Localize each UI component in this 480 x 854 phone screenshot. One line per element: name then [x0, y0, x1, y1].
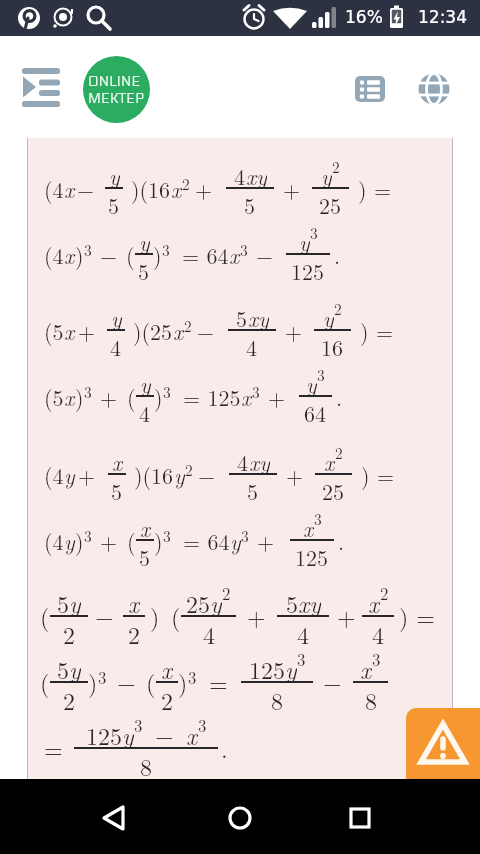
staticText: + [100, 525, 118, 556]
staticText: (4 [44, 459, 64, 490]
staticText: x [128, 586, 140, 615]
staticText: 125 [291, 255, 325, 282]
staticText: x [140, 512, 151, 539]
staticText: 5 [138, 255, 150, 282]
staticText: 5 [108, 189, 120, 216]
staticText: 2 [63, 683, 75, 712]
staticText: 5 [236, 302, 248, 329]
staticText: 3 [241, 525, 249, 547]
staticText: x [64, 239, 75, 270]
staticText: y [122, 718, 134, 747]
staticText: − [198, 459, 216, 490]
staticText: x [112, 446, 123, 473]
staticText: 3 [84, 381, 92, 403]
staticText: (4 [44, 239, 64, 270]
staticText: 3 [317, 364, 325, 386]
staticText: 125 [249, 652, 285, 681]
staticText: 2 [184, 315, 192, 337]
staticText: 3 [162, 239, 170, 261]
staticText: ) [178, 665, 188, 699]
staticText: y [64, 525, 75, 556]
staticText: = 64 [183, 525, 230, 556]
staticText: 3 [163, 525, 171, 547]
staticText: + [268, 381, 286, 412]
staticText: (5 [44, 381, 64, 412]
staticText: x [241, 381, 252, 412]
staticText: 3 [372, 647, 381, 671]
staticText: x [171, 173, 182, 204]
staticText: ( [146, 665, 156, 699]
staticText: 3 [310, 222, 318, 244]
staticText: 3 [84, 239, 92, 261]
staticText: 125 [86, 718, 122, 747]
staticText: = 125 [183, 381, 241, 412]
staticText: xy [249, 446, 270, 473]
staticText: )(16 [134, 459, 174, 490]
staticText: 3 [198, 713, 207, 737]
staticText: x [64, 381, 75, 412]
staticText: ) [88, 665, 98, 699]
staticText: x [324, 446, 335, 473]
staticText: ) = [360, 315, 394, 346]
staticText: 2 [334, 298, 342, 320]
staticText: 16% [345, 7, 383, 27]
staticText: 4 [237, 446, 249, 473]
staticText: x [64, 173, 75, 204]
staticText: 64 [304, 397, 327, 424]
staticText: (4 [44, 173, 64, 204]
button[interactable]: Menu [14, 62, 68, 112]
staticText: 8 [365, 683, 377, 712]
staticText: + [257, 525, 275, 556]
staticText: 2 [63, 617, 75, 646]
staticText: ( [40, 599, 50, 633]
staticText: 3 [163, 381, 171, 403]
button[interactable]: List [348, 67, 392, 111]
staticText: ) [75, 381, 84, 412]
staticText: y [299, 226, 310, 253]
staticText: y [230, 525, 241, 556]
staticText: 5 [244, 189, 256, 216]
button[interactable]: Home [215, 793, 265, 843]
button[interactable]: Recents [335, 793, 385, 843]
staticText: ) [154, 381, 163, 412]
staticText: 4 [139, 397, 151, 424]
staticText: 3 [84, 525, 92, 547]
staticText: 125 [295, 541, 329, 568]
staticText: 16 [321, 331, 344, 358]
staticText: ( [127, 525, 136, 556]
staticText: + [195, 173, 213, 204]
staticText: y [285, 652, 297, 681]
staticText: y [210, 586, 222, 615]
staticText: 25 [319, 189, 342, 216]
staticText: 5 [111, 475, 123, 502]
staticText: 2 [128, 617, 140, 646]
staticText: xy [246, 160, 267, 187]
staticText: y [306, 368, 317, 395]
staticText: − [100, 239, 118, 270]
staticText: 2 [185, 459, 193, 481]
button[interactable]: Warning [406, 708, 480, 779]
button[interactable]: Language [412, 67, 456, 111]
staticText: x [360, 652, 372, 681]
staticText: 4 [110, 331, 122, 358]
staticText: . [221, 731, 228, 765]
staticText: x [303, 512, 314, 539]
staticText: y [174, 459, 185, 490]
staticText: − [77, 173, 95, 204]
button[interactable]: Back [96, 793, 146, 843]
staticText: ) [150, 599, 160, 633]
staticText: = 64 [182, 239, 229, 270]
staticText: 2 [222, 581, 231, 605]
staticText: 2 [332, 156, 340, 178]
staticText: + [100, 381, 118, 412]
staticText: x [64, 315, 75, 346]
staticText: − [155, 718, 174, 747]
staticText: . [334, 239, 341, 270]
staticText: 4 [203, 617, 215, 646]
staticText: . [338, 525, 345, 556]
button[interactable]: Online Mektep [83, 56, 150, 123]
staticText: y [64, 459, 75, 490]
staticText: . [336, 381, 343, 412]
staticText: x [173, 315, 184, 346]
staticText: x [186, 718, 198, 747]
